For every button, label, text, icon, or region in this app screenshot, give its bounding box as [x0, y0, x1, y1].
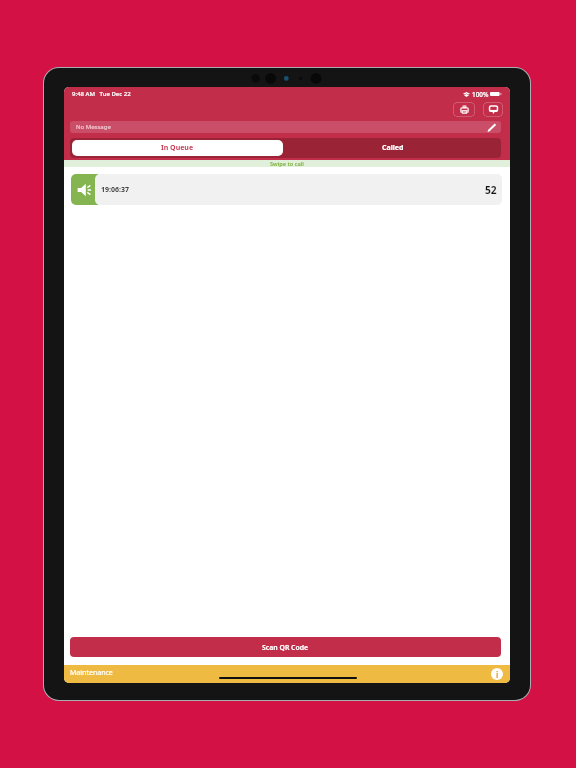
button[interactable]: Info [491, 668, 503, 680]
staticText: 100% [472, 90, 489, 99]
button[interactable]: In Queue [72, 140, 283, 156]
staticText: Maintenance [70, 668, 113, 678]
button[interactable]: 19:06:37 [95, 174, 502, 205]
staticText: In Queue [161, 143, 194, 153]
button[interactable]: Scan QR Code [70, 637, 501, 657]
staticText: 9:48 AM Tue Dec 22 [72, 90, 131, 98]
staticText: i [496, 669, 499, 680]
staticText: 19:06:37 [101, 185, 129, 195]
staticText: Swipe to call [270, 160, 304, 167]
button[interactable]: Print [453, 102, 475, 117]
button[interactable]: Display [483, 102, 503, 117]
button[interactable]: Edit [486, 122, 497, 133]
staticText: Scan QR Code [262, 643, 309, 652]
staticText: Called [382, 143, 404, 153]
staticText: 52 [485, 183, 497, 197]
button[interactable]: Called [285, 138, 501, 158]
button[interactable]: Call [71, 174, 98, 205]
button[interactable]: No Message [70, 121, 501, 133]
staticText: No Message [76, 123, 111, 131]
